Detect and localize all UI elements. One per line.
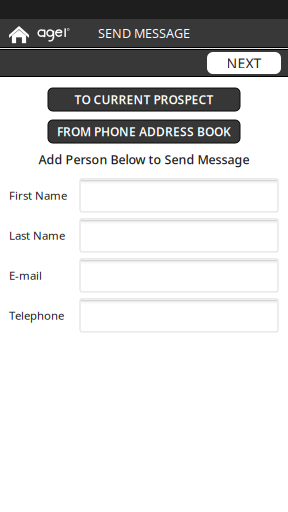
button[interactable]: FROM PHONE ADDRESS BOOK [48, 120, 240, 143]
staticText: NEXT [226, 53, 261, 73]
button[interactable]: NEXT [207, 52, 281, 74]
button[interactable]: Home [0, 19, 76, 47]
button[interactable]: TO CURRENT PROSPECT [48, 88, 240, 111]
staticText: Add Person Below to Send Message [38, 151, 249, 168]
staticText: FROM PHONE ADDRESS BOOK [57, 123, 231, 140]
staticText: Last Name [9, 228, 65, 243]
staticText: E-mail [9, 268, 42, 283]
staticText: First Name [9, 188, 67, 203]
staticText: SEND MESSAGE [98, 24, 190, 42]
staticText: TO CURRENT PROSPECT [74, 91, 213, 108]
staticText: Telephone [9, 308, 64, 323]
